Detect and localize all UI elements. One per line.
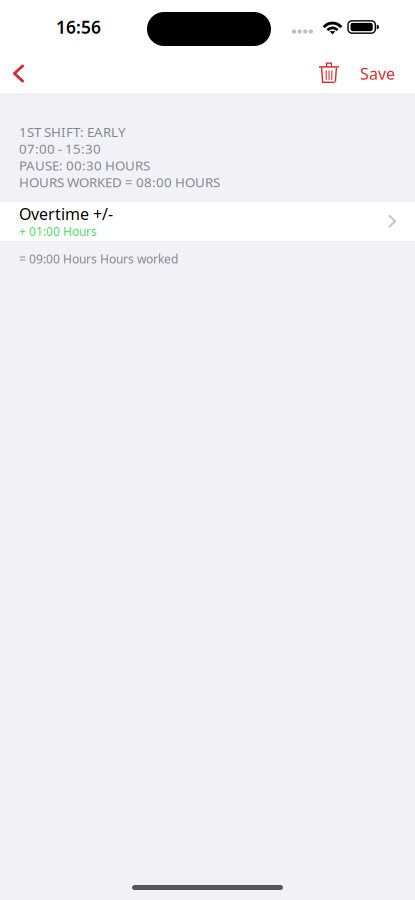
- staticText: HOURS WORKED = 08:00 HOURS: [19, 173, 220, 191]
- staticText: = 09:00 Hours Hours worked: [19, 251, 178, 267]
- button[interactable]: Delete: [307, 54, 349, 92]
- button[interactable]: Overtime +/-: [0, 201, 415, 242]
- button[interactable]: Back: [0, 54, 40, 92]
- staticText: Save: [360, 63, 395, 84]
- staticText: + 01:00 Hours: [19, 223, 97, 239]
- staticText: 1ST SHIFT: EARLY: [19, 123, 126, 141]
- staticText: 07:00 - 15:30: [19, 140, 101, 157]
- button[interactable]: Save: [349, 53, 406, 94]
- staticText: 16:56: [56, 15, 101, 38]
- staticText: Overtime +/-: [19, 203, 113, 224]
- staticText: PAUSE: 00:30 HOURS: [19, 156, 150, 174]
